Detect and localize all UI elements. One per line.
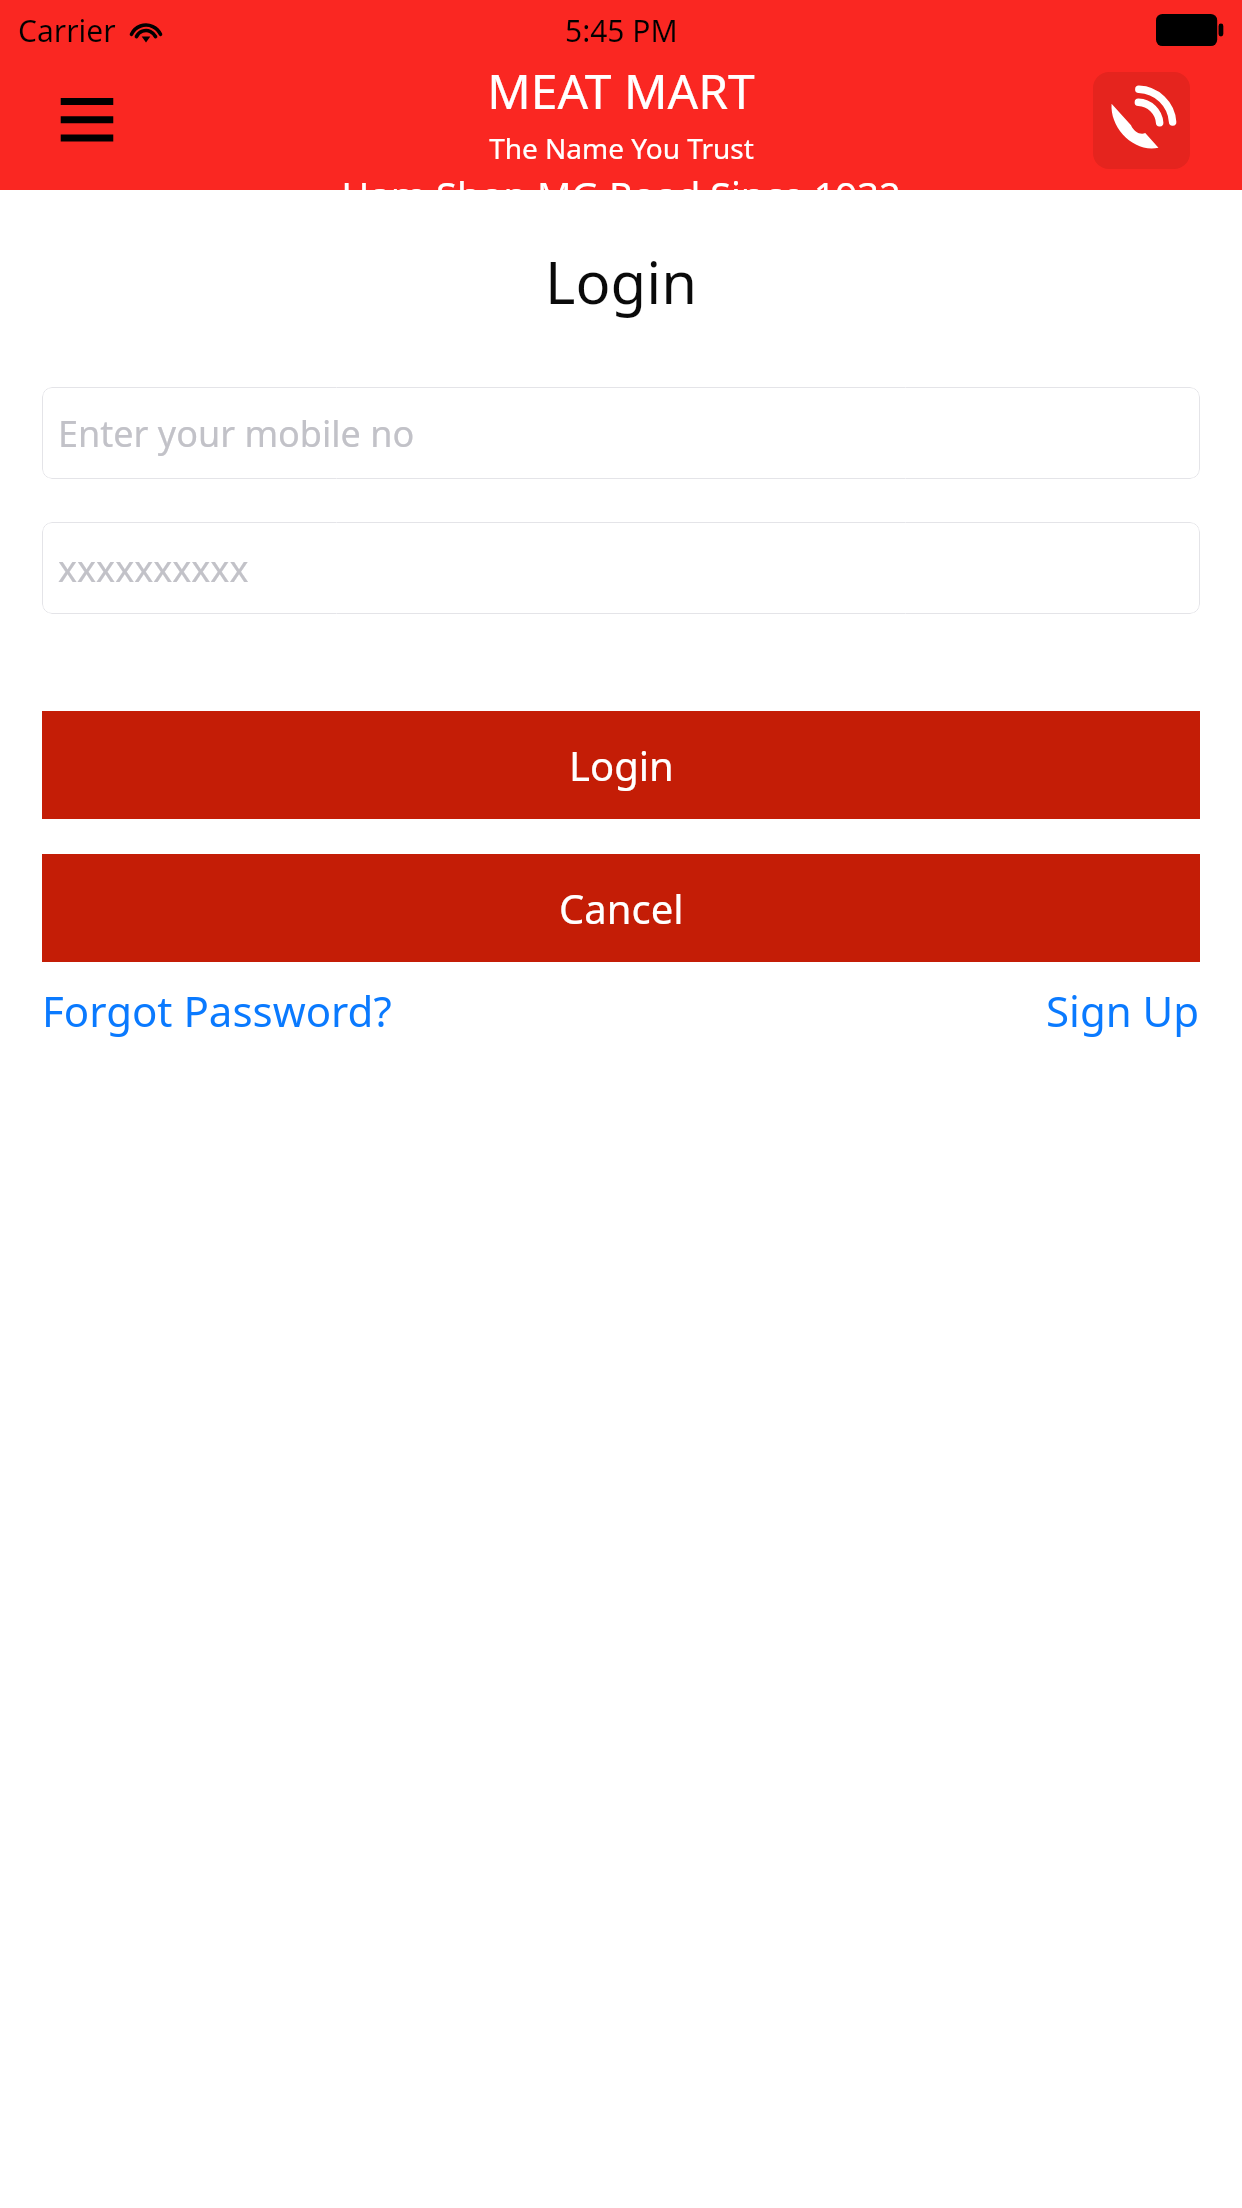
staticText: Cancel	[559, 881, 684, 935]
button[interactable]: Menu	[40, 82, 114, 152]
staticText: Forgot Password?	[42, 982, 392, 1039]
button[interactable]: Cancel	[42, 854, 1200, 962]
staticText: MEAT MART	[487, 58, 755, 123]
staticText: xxxxxxxxxx	[58, 544, 249, 593]
staticText: The Name You Trust	[489, 129, 754, 167]
button[interactable]: Call	[1093, 72, 1190, 169]
staticText: Enter your mobile no	[58, 409, 415, 458]
staticText: 5:45 PM	[565, 10, 678, 51]
button[interactable]: xxxxxxxxxx	[42, 522, 1200, 614]
button[interactable]: Sign Up	[1046, 982, 1200, 1039]
staticText: Sign Up	[1046, 982, 1200, 1039]
staticText: Login	[0, 242, 1242, 321]
button[interactable]: Forgot Password?	[42, 982, 392, 1039]
staticText: Login	[569, 738, 674, 792]
staticText: Ham Shop,MG Road Since 1932	[341, 169, 901, 190]
staticText: Carrier	[18, 10, 116, 51]
button[interactable]: Login	[42, 711, 1200, 819]
button[interactable]: Enter your mobile no	[42, 387, 1200, 479]
